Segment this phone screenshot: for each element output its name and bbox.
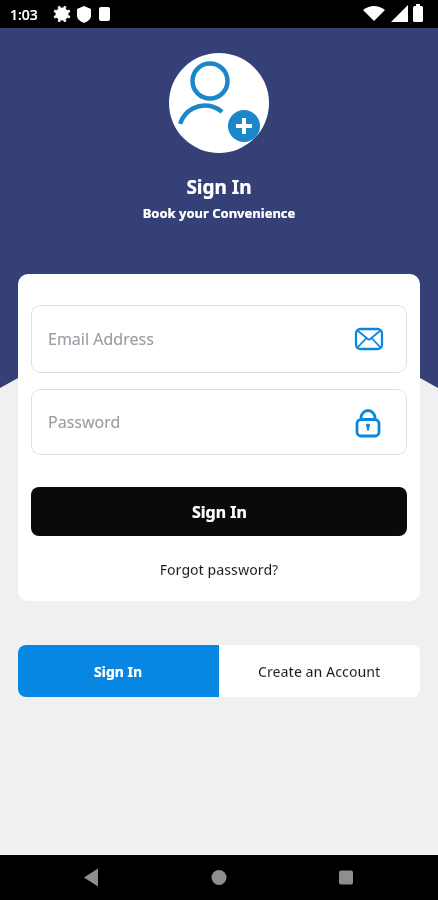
- staticText: Sign In: [192, 501, 247, 523]
- button[interactable]: Forgot password?: [18, 560, 420, 579]
- staticText: Create an Account: [258, 662, 381, 681]
- button[interactable]: Create an Account: [219, 645, 420, 697]
- staticText: Sign In: [94, 662, 143, 681]
- button[interactable]: [146, 855, 292, 900]
- button[interactable]: Sign In: [18, 645, 219, 697]
- staticText: Book your Convenience: [0, 204, 438, 222]
- button[interactable]: Password: [31, 389, 407, 455]
- button[interactable]: Sign In: [31, 487, 407, 536]
- button[interactable]: [0, 855, 146, 900]
- staticText: Password: [48, 411, 121, 433]
- button[interactable]: Email Address: [31, 305, 407, 373]
- staticText: Email Address: [48, 328, 154, 350]
- staticText: Sign In: [0, 174, 438, 200]
- button[interactable]: [292, 855, 438, 900]
- staticText: 1:03: [10, 5, 38, 24]
